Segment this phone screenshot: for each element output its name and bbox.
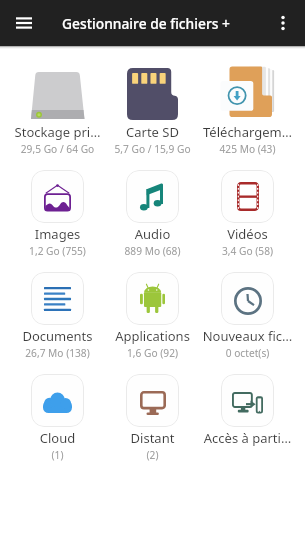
staticText: Documents [10, 327, 105, 345]
staticText: Vidéos [200, 225, 295, 243]
staticText: 889 Mo (68) [105, 244, 200, 258]
staticText: Accès à parti… [200, 429, 295, 447]
staticText: (2) [105, 448, 200, 462]
staticText: Carte SD [105, 123, 200, 141]
staticText: 1,2 Go (755) [10, 244, 105, 258]
button[interactable]: Accès à parti… [200, 368, 295, 470]
button[interactable]: Nouveaux fic… [200, 266, 295, 368]
staticText: 29,5 Go / 64 Go [10, 142, 105, 156]
staticText: 0 octet(s) [200, 346, 295, 360]
button[interactable]: Cloud [10, 368, 105, 470]
staticText: 1,6 Go (92) [105, 346, 200, 360]
button[interactable]: Audio [105, 164, 200, 266]
staticText: 425 Mo (43) [200, 142, 295, 156]
staticText: Stockage pri… [10, 123, 105, 141]
staticText: 26,7 Mo (138) [10, 346, 105, 360]
button[interactable]: Documents [10, 266, 105, 368]
staticText: Distant [105, 429, 200, 447]
button[interactable]: Distant [105, 368, 200, 470]
staticText: 5,7 Go / 15,9 Go [105, 142, 200, 156]
staticText: 3,4 Go (58) [200, 244, 295, 258]
staticText: Téléchargem… [200, 123, 295, 141]
button[interactable]: More options [267, 7, 299, 39]
button[interactable]: Stockage pri… [10, 62, 105, 164]
button[interactable]: Images [10, 164, 105, 266]
staticText: Audio [105, 225, 200, 243]
staticText: Cloud [10, 429, 105, 447]
button[interactable]: Téléchargem… [200, 62, 295, 164]
button[interactable]: Carte SD [105, 62, 200, 164]
staticText: Images [10, 225, 105, 243]
staticText: (1) [10, 448, 105, 462]
button[interactable]: Vidéos [200, 164, 295, 266]
staticText: Nouveaux fic… [200, 327, 295, 345]
staticText: Gestionnaire de fichiers + [62, 14, 230, 33]
button[interactable]: Applications [105, 266, 200, 368]
staticText: Applications [105, 327, 200, 345]
button[interactable]: Menu [8, 7, 40, 39]
